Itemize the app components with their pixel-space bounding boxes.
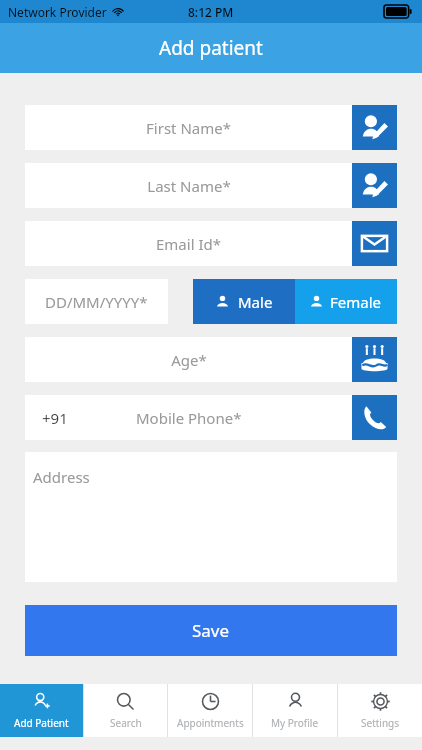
- staticText: Network Provider: [8, 4, 107, 20]
- staticText: Email Id*: [156, 234, 221, 254]
- button[interactable]: Appointments: [168, 684, 252, 737]
- staticText: Save: [192, 619, 230, 642]
- staticText: Last Name*: [147, 176, 231, 196]
- staticText: Add patient: [159, 35, 263, 61]
- staticText: Add Patient: [14, 716, 69, 730]
- button[interactable]: Add Patient: [0, 684, 83, 737]
- button[interactable]: Edit name: [352, 105, 397, 150]
- button[interactable]: Email Id*: [25, 221, 352, 266]
- button[interactable]: Edit name: [352, 163, 397, 208]
- staticText: Appointments: [177, 716, 244, 730]
- button[interactable]: Last Name*: [25, 163, 352, 208]
- button[interactable]: Save: [25, 605, 397, 656]
- button[interactable]: Age: [352, 337, 397, 382]
- staticText: Settings: [361, 716, 400, 730]
- staticText: First Name*: [146, 118, 231, 138]
- staticText: Female: [330, 292, 382, 312]
- staticText: Mobile Phone*: [136, 408, 242, 428]
- staticText: DD/MM/YYYY*: [45, 292, 148, 312]
- staticText: 8:12 PM: [188, 4, 234, 20]
- staticText: Address: [33, 467, 90, 487]
- button[interactable]: Call: [352, 395, 397, 440]
- button[interactable]: First Name*: [25, 105, 352, 150]
- staticText: +91: [42, 408, 68, 428]
- staticText: My Profile: [271, 716, 319, 730]
- button[interactable]: Age*: [25, 337, 352, 382]
- button[interactable]: +91: [25, 395, 352, 440]
- button[interactable]: Male: [193, 279, 295, 324]
- button[interactable]: DD/MM/YYYY*: [25, 279, 168, 324]
- button[interactable]: My Profile: [253, 684, 337, 737]
- button[interactable]: Settings: [338, 684, 422, 737]
- staticText: Age*: [171, 350, 207, 370]
- button[interactable]: Address: [25, 452, 397, 582]
- button[interactable]: Female: [295, 279, 397, 324]
- staticText: Male: [238, 292, 273, 312]
- button[interactable]: Email: [352, 221, 397, 266]
- staticText: Search: [110, 716, 142, 730]
- button[interactable]: Search: [84, 684, 167, 737]
